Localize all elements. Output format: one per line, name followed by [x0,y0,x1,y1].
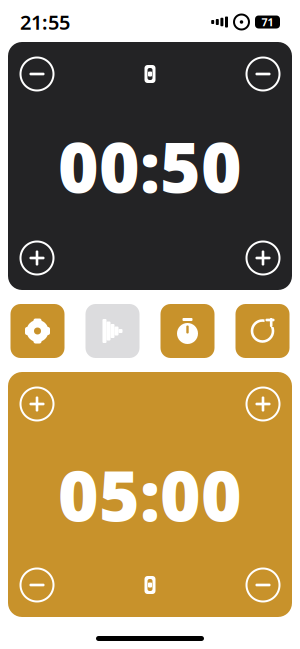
button[interactable]: Subtract time [243,54,283,94]
button[interactable]: Add time [17,384,57,424]
button[interactable]: Subtract time [17,54,57,94]
button[interactable]: Add time [17,238,57,278]
staticText: 21:55 [20,9,70,35]
button[interactable]: Subtract time [17,565,57,605]
staticText: 71 [261,15,273,29]
button[interactable]: Reset [235,304,289,358]
button[interactable]: Settings [10,304,64,358]
staticText: 05:00 [58,448,242,541]
button[interactable]: Start [85,304,139,358]
button[interactable]: Stopwatch [160,304,214,358]
button[interactable]: Add time [243,238,283,278]
staticText: 00:50 [58,120,242,212]
button[interactable]: Add time [243,384,283,424]
button[interactable]: Subtract time [243,565,283,605]
